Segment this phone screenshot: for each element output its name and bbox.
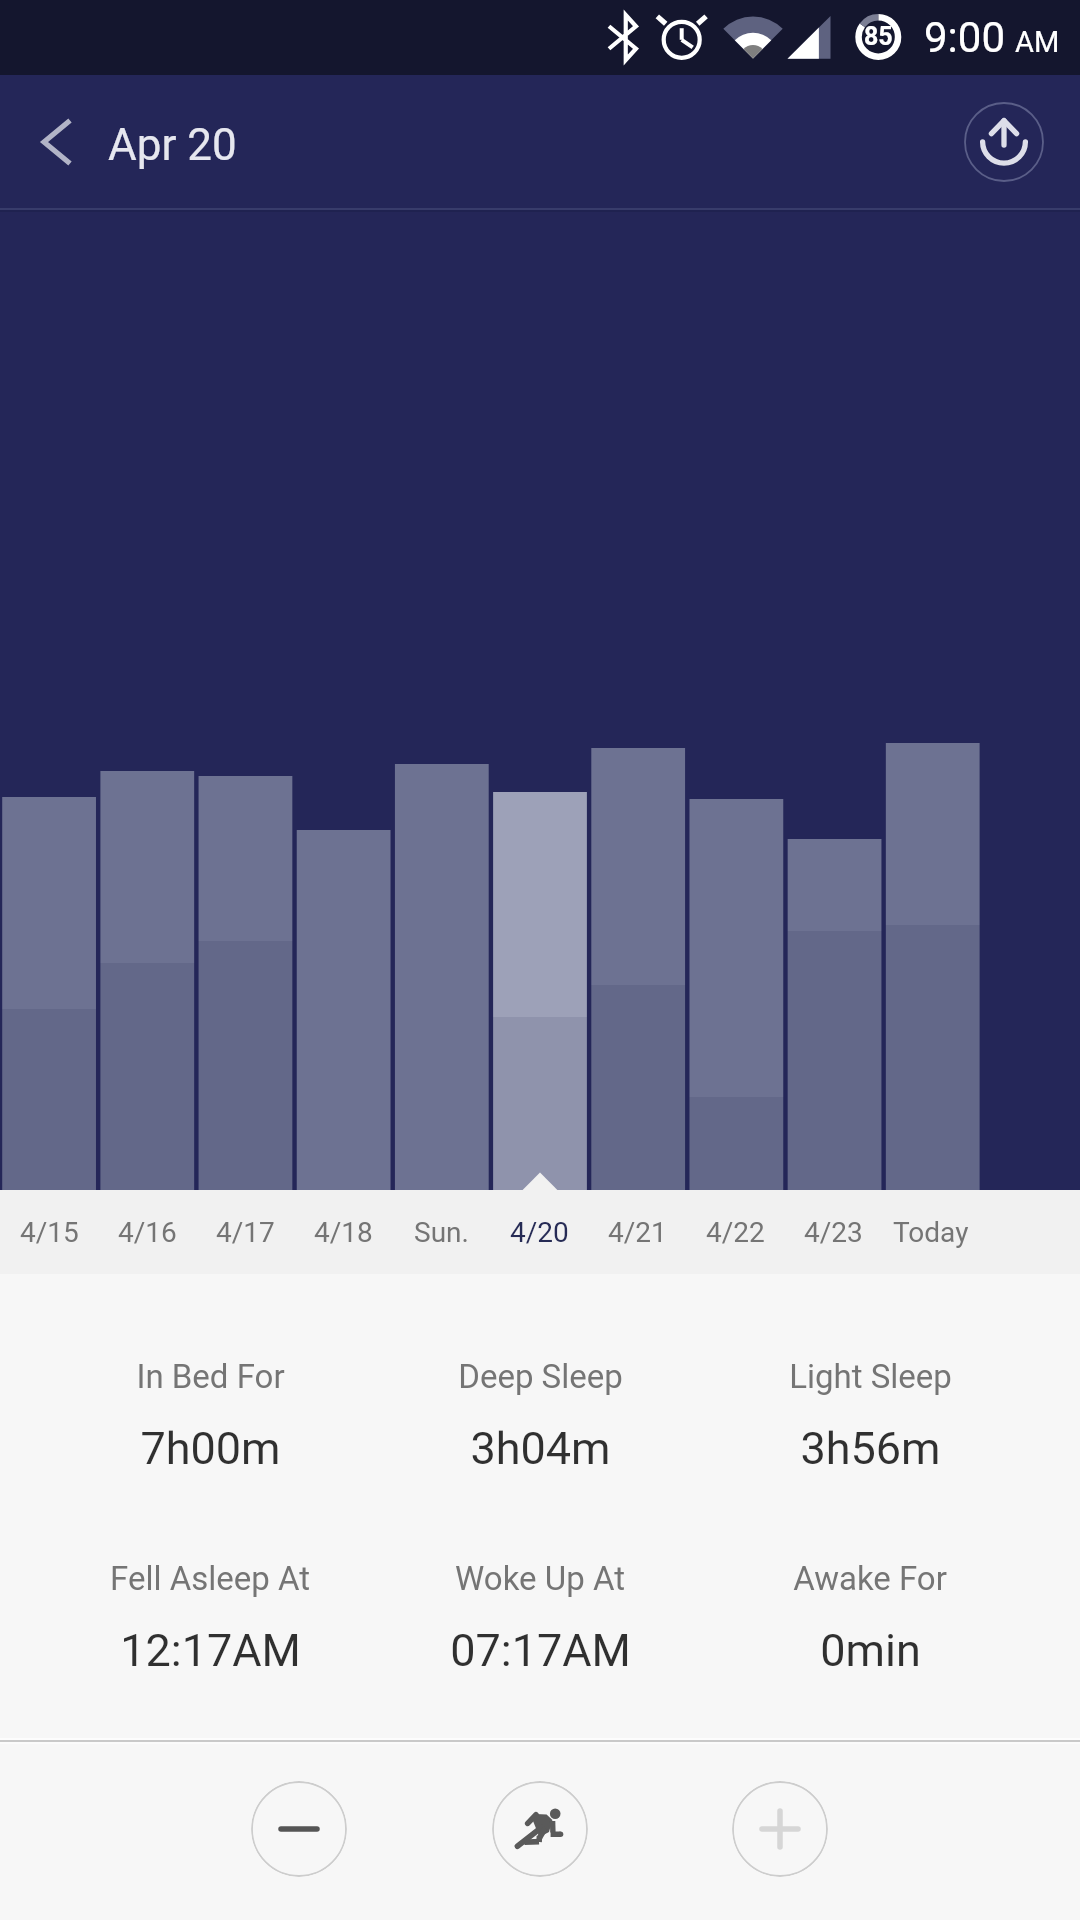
button[interactable]: Today [882,1190,980,1274]
staticText: Woke Up At [455,1559,625,1598]
button[interactable]: Back [12,97,102,187]
staticText: In Bed For [136,1357,285,1396]
staticText: Today [893,1216,969,1249]
button[interactable]: 4/18 [294,1190,392,1274]
staticText: 4/17 [216,1216,275,1249]
button[interactable]: 4/21 [588,1190,686,1274]
staticText: 12:17AM [120,1624,301,1677]
staticText: 4/15 [20,1216,79,1249]
staticText: Deep Sleep [458,1357,623,1396]
staticText: Fell Asleep At [110,1559,310,1598]
staticText: 4/21 [608,1216,667,1249]
button[interactable]: Share [959,97,1049,187]
staticText: 4/23 [804,1216,863,1249]
staticText: 4/20 [510,1216,569,1249]
staticText: Awake For [793,1559,947,1598]
staticText: Apr 20 [108,119,237,171]
staticText: AM [1015,25,1060,59]
staticText: 4/22 [706,1216,765,1249]
button[interactable]: 4/20 [490,1190,588,1274]
button[interactable]: 4/23 [784,1190,882,1274]
staticText: 7h00m [140,1422,281,1475]
button[interactable]: Decrease sleep time [251,1781,347,1877]
staticText: 4/16 [118,1216,177,1249]
staticText: Sun. [414,1216,469,1249]
button[interactable]: 4/16 [98,1190,196,1274]
staticText: 9:00 [924,13,1005,62]
staticText: 85 [864,22,893,51]
staticText: 0min [820,1624,921,1677]
staticText: Light Sleep [789,1357,952,1396]
button[interactable]: Activity [492,1781,588,1877]
staticText: 3h56m [800,1422,941,1475]
button[interactable]: 4/22 [686,1190,784,1274]
button[interactable]: Increase sleep time [732,1781,828,1877]
button[interactable]: Sun. [392,1190,490,1274]
button[interactable]: 4/15 [0,1190,98,1274]
staticText: 07:17AM [450,1624,631,1677]
staticText: 4/18 [314,1216,373,1249]
button[interactable]: 4/17 [196,1190,294,1274]
staticText: 3h04m [470,1422,611,1475]
